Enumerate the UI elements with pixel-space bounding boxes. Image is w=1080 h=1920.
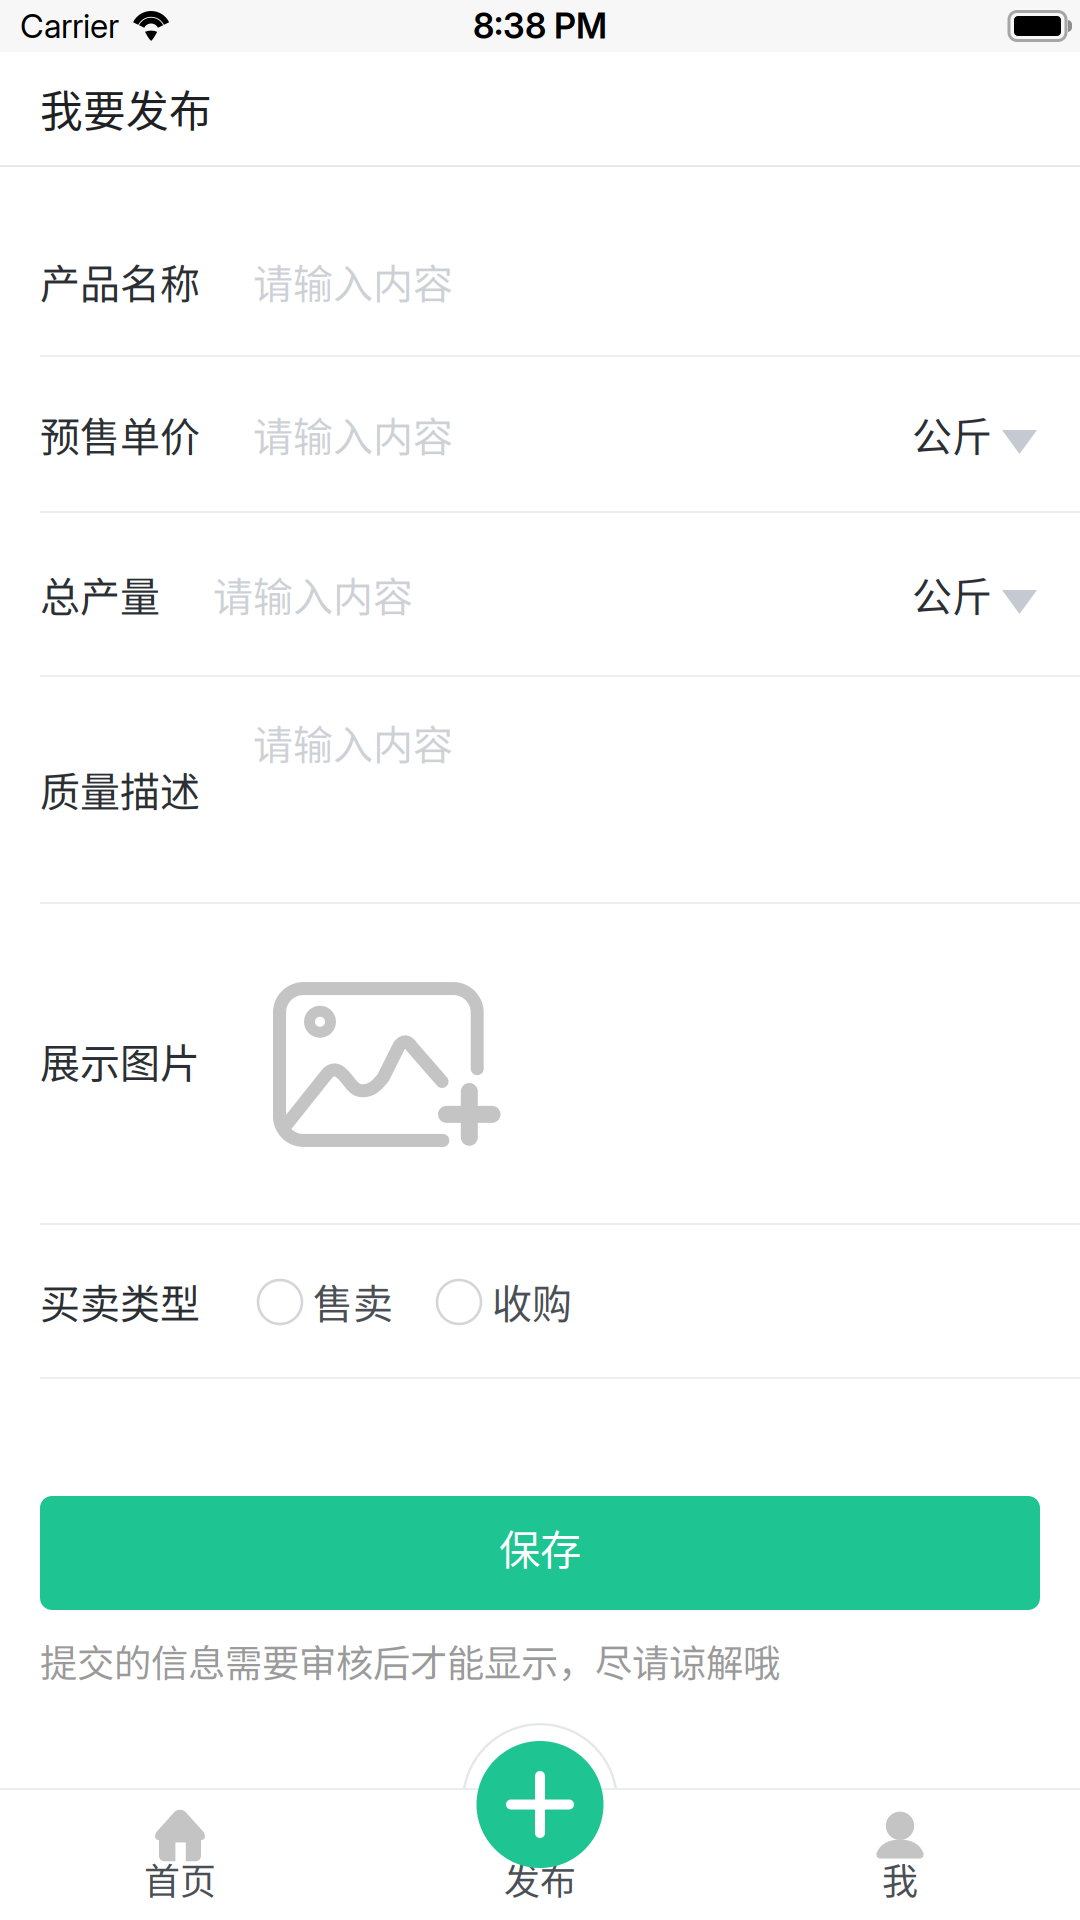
button[interactable]: 公斤 (909, 405, 1037, 463)
staticText: 8:38 PM (473, 5, 607, 47)
staticText: Carrier (20, 6, 119, 46)
staticText: 总产量 (40, 565, 160, 623)
staticText: 请输入内容 (253, 252, 453, 310)
button[interactable]: 收购 (437, 1272, 572, 1330)
staticText: 收购 (492, 1272, 572, 1330)
staticText: 我 (882, 1853, 918, 1905)
staticText: 买卖类型 (40, 1272, 200, 1330)
button[interactable]: 首页 (0, 1790, 360, 1920)
button[interactable]: 发布 (360, 1790, 720, 1920)
staticText: 我要发布 (40, 78, 212, 139)
button[interactable]: 我 (720, 1790, 1080, 1920)
staticText: 提交的信息需要审核后才能显示，尽请谅解哦 (40, 1634, 780, 1688)
button[interactable]: 添加图片 (273, 978, 500, 1143)
staticText: 售卖 (313, 1272, 393, 1330)
staticText: 首页 (144, 1853, 216, 1905)
staticText: 产品名称 (40, 252, 200, 310)
staticText: 发布 (504, 1853, 576, 1905)
staticText: 保存 (499, 1517, 581, 1577)
staticText: 公斤 (912, 405, 992, 463)
staticText: 质量描述 (40, 760, 200, 818)
button[interactable]: 售卖 (258, 1272, 393, 1330)
staticText: 展示图片 (40, 1031, 200, 1089)
staticText: 请输入内容 (253, 713, 453, 771)
staticText: 请输入内容 (213, 565, 413, 623)
staticText: 公斤 (912, 565, 992, 623)
staticText: 预售单价 (40, 405, 200, 463)
staticText: 请输入内容 (253, 405, 453, 463)
button[interactable]: 公斤 (909, 565, 1037, 623)
button[interactable]: 保存 (40, 1496, 1040, 1610)
button[interactable]: 发布 (476, 1741, 603, 1868)
